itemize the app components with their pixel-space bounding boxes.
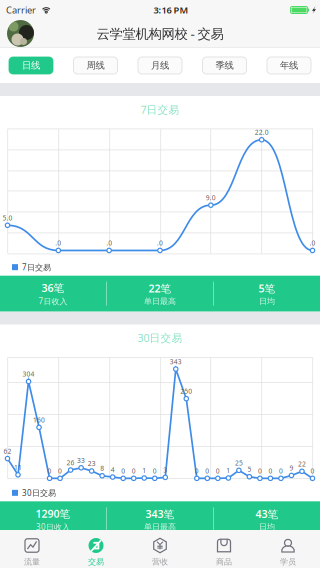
button[interactable]: 日线 xyxy=(9,57,53,74)
staticText: 单日最高 xyxy=(144,296,176,306)
staticText: 26 xyxy=(67,458,75,467)
staticText: 交易 xyxy=(88,557,104,567)
staticText: 11 xyxy=(14,463,22,472)
staticText: 0 xyxy=(268,466,272,475)
staticText: 30日交易 xyxy=(22,487,56,498)
staticText: 0 xyxy=(132,466,136,475)
button[interactable]: 季线 xyxy=(202,57,246,74)
staticText: 季线 xyxy=(215,60,233,71)
staticText: 62 xyxy=(3,447,11,456)
staticText: .0 xyxy=(106,238,112,247)
staticText: 0 xyxy=(205,466,209,475)
staticText: 营收 xyxy=(152,557,168,567)
staticText: 343笔 xyxy=(145,507,174,521)
button[interactable]: 交易 xyxy=(64,530,128,568)
staticText: 学员 xyxy=(280,557,296,567)
staticText: 年线 xyxy=(280,60,298,71)
staticText: 0 xyxy=(153,466,157,475)
staticText: 7日交易 xyxy=(22,262,51,272)
staticText: 商品 xyxy=(216,557,232,567)
staticText: 云学堂机构网校 - 交易 xyxy=(96,25,223,42)
staticText: 日均 xyxy=(259,296,275,306)
staticText: .0 xyxy=(157,238,163,247)
staticText: 23 xyxy=(88,459,96,468)
staticText: 22笔 xyxy=(148,281,171,295)
staticText: 3:16 PM xyxy=(154,4,189,16)
staticText: 1 xyxy=(226,466,230,475)
staticText: 30日交易 xyxy=(137,331,182,345)
button[interactable]: 学员 xyxy=(256,530,320,568)
staticText: 7日交易 xyxy=(140,102,179,117)
staticText: Carrier xyxy=(6,4,36,16)
staticText: 22.0 xyxy=(255,128,269,137)
staticText: 304 xyxy=(22,370,34,378)
staticText: 250 xyxy=(180,387,192,396)
staticText: 单日最高 xyxy=(144,522,176,532)
staticText: 0 xyxy=(195,466,199,475)
staticText: 30日收入 xyxy=(36,522,70,532)
staticText: 0 xyxy=(279,466,283,475)
staticText: 流量 xyxy=(24,557,40,567)
button[interactable]: 营收 xyxy=(128,530,192,568)
staticText: 25 xyxy=(235,458,243,467)
staticText: 月线 xyxy=(151,60,169,71)
staticText: 22 xyxy=(298,459,306,468)
staticText: 43笔 xyxy=(255,507,278,521)
staticText: 36笔 xyxy=(41,281,64,295)
staticText: .0 xyxy=(55,238,61,247)
staticText: 0 xyxy=(216,466,220,475)
button[interactable]: 年线 xyxy=(267,57,311,74)
staticText: 160 xyxy=(33,415,45,424)
staticText: 3 xyxy=(163,465,167,474)
button[interactable]: 商品 xyxy=(192,530,256,568)
staticText: 日线 xyxy=(22,60,40,71)
button[interactable]: Profile xyxy=(7,20,34,47)
staticText: 5笔 xyxy=(258,281,275,295)
staticText: 日均 xyxy=(259,522,275,532)
staticText: .0 xyxy=(309,238,315,247)
button[interactable]: 月线 xyxy=(138,57,182,74)
staticText: 0 xyxy=(258,466,262,475)
staticText: 9.0 xyxy=(206,193,216,202)
staticText: 0 xyxy=(48,466,52,475)
staticText: 8 xyxy=(100,464,104,473)
staticText: 5.0 xyxy=(2,213,12,222)
staticText: 周线 xyxy=(86,60,104,71)
button[interactable]: 流量 xyxy=(0,530,64,568)
staticText: 343 xyxy=(170,357,182,366)
button[interactable]: 周线 xyxy=(73,57,117,74)
staticText: 5 xyxy=(247,465,251,474)
staticText: 4 xyxy=(111,465,115,474)
staticText: 1 xyxy=(142,466,146,475)
staticText: 33 xyxy=(77,456,85,465)
staticText: 0 xyxy=(121,466,125,475)
staticText: 0 xyxy=(58,466,62,475)
staticText: 9 xyxy=(289,463,293,472)
staticText: 0 xyxy=(310,466,314,475)
staticText: 1290笔 xyxy=(35,506,70,521)
staticText: 7日收入 xyxy=(38,296,67,306)
